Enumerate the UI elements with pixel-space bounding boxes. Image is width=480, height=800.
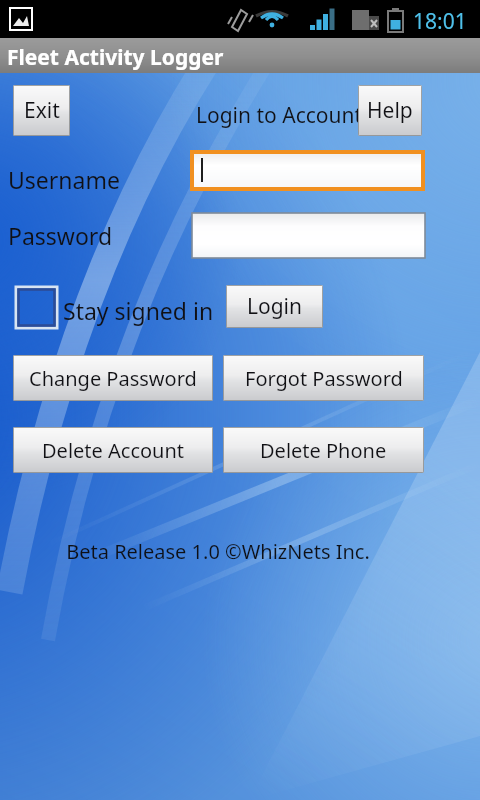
staticText: Exit <box>24 96 60 125</box>
button[interactable]: Delete Account <box>13 427 213 473</box>
button[interactable]: Forgot Password <box>223 355 424 401</box>
button[interactable]: Delete Phone <box>223 427 424 473</box>
button[interactable]: Help <box>358 85 422 136</box>
staticText: Fleet Activity Logger <box>7 43 224 72</box>
staticText: Stay signed in <box>63 295 214 326</box>
staticText: Change Password <box>29 365 197 392</box>
staticText: Login to Account <box>196 101 363 130</box>
staticText: Delete Phone <box>260 437 387 464</box>
button[interactable]: Stay signed in checkbox <box>16 287 57 328</box>
staticText: 18:01 <box>413 7 467 36</box>
staticText: Forgot Password <box>245 365 403 392</box>
staticText: Beta Release 1.0 ©WhizNets Inc. <box>66 538 370 565</box>
button[interactable] <box>192 213 425 258</box>
button[interactable] <box>190 150 425 191</box>
staticText: Password <box>8 220 113 251</box>
button[interactable]: Exit <box>13 85 70 136</box>
button[interactable]: Change Password <box>13 355 213 401</box>
staticText: Delete Account <box>42 437 185 464</box>
staticText: Username <box>8 164 120 195</box>
staticText: Help <box>367 96 413 125</box>
button[interactable]: Login <box>226 285 323 328</box>
staticText: Login <box>247 292 303 321</box>
